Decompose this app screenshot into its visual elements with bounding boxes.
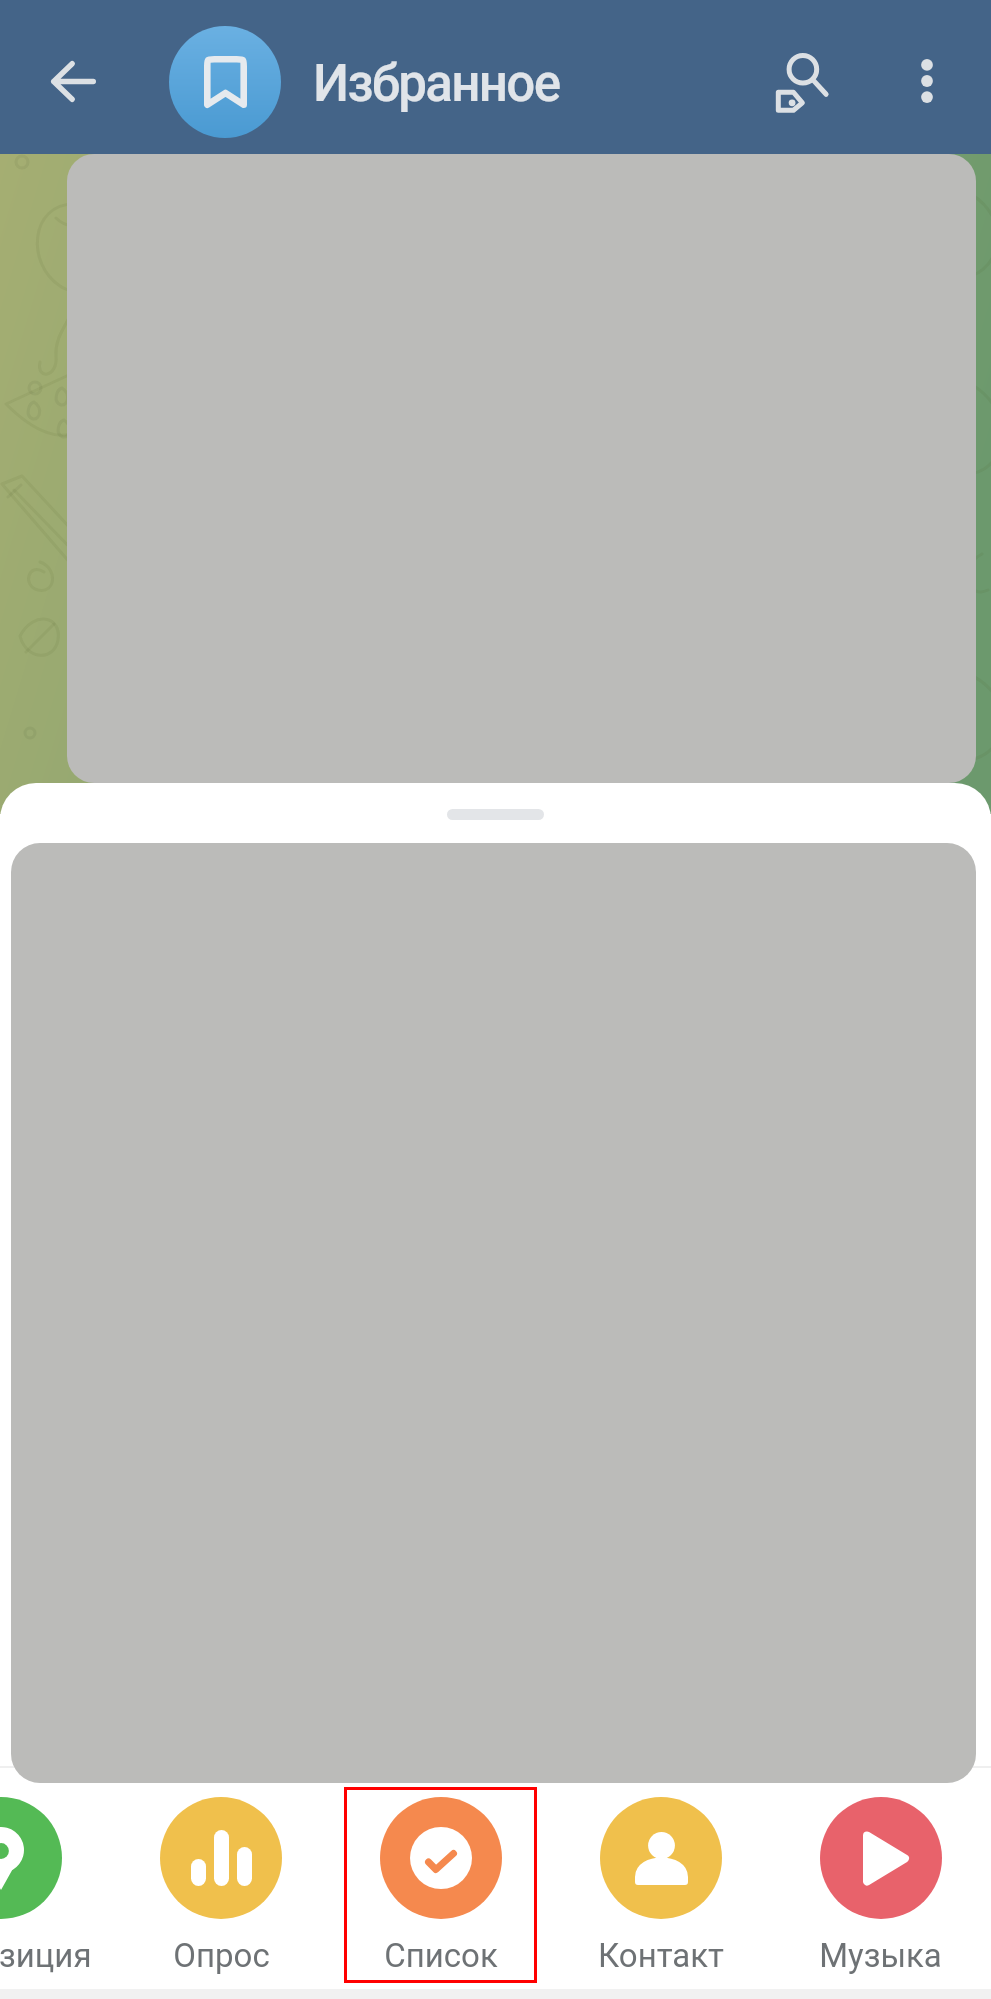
staticText: Список: [384, 1936, 498, 1975]
staticText: Контакт: [598, 1936, 724, 1975]
button[interactable]: Back: [25, 33, 121, 129]
button[interactable]: Saved Messages: [169, 26, 281, 138]
staticText: Музыка: [819, 1936, 942, 1975]
button[interactable]: Музыка: [784, 1787, 977, 1983]
staticText: Геопозиция: [0, 1936, 92, 1975]
button[interactable]: More options: [879, 33, 975, 129]
button[interactable]: Контакт: [564, 1787, 757, 1983]
button[interactable]: Search: [753, 34, 849, 130]
staticText: Избранное: [313, 54, 560, 114]
button[interactable]: Геопозиция: [0, 1787, 97, 1983]
button[interactable]: Список: [344, 1787, 537, 1983]
button[interactable]: Опрос: [124, 1787, 317, 1983]
staticText: Опрос: [173, 1936, 270, 1975]
